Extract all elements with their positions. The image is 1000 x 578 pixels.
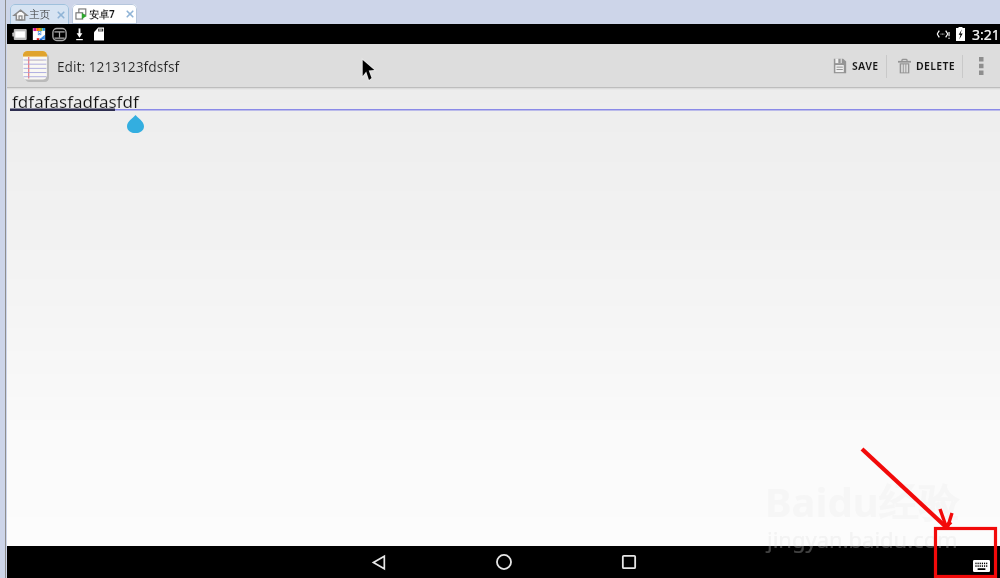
button[interactable]: Download (69, 24, 89, 44)
button[interactable]: Screen layout (49, 24, 69, 44)
button[interactable]: SD card (89, 24, 109, 44)
button[interactable]: Home (480, 546, 528, 578)
staticText: 主页 (29, 8, 50, 21)
button[interactable]: Recents (605, 546, 653, 578)
button[interactable]: Back (355, 546, 403, 578)
button[interactable]: 主页 (10, 4, 69, 25)
button[interactable]: 安卓7 (72, 4, 137, 24)
staticText: 安卓7 (89, 7, 115, 21)
staticText: 3:21 (972, 25, 1000, 44)
staticText: Baidu经验 (765, 474, 959, 529)
staticText: Edit: 1213123fdsfsf (57, 57, 180, 76)
button[interactable]: More options (963, 44, 999, 88)
button[interactable]: fdfafasfadfasfdf (7, 88, 1000, 546)
staticText: DELETE (916, 59, 956, 73)
staticText: jingyan.baidu.com (767, 524, 958, 554)
staticText: SAVE (852, 59, 879, 73)
button[interactable]: Apps (29, 24, 49, 44)
button[interactable]: DELETE (887, 44, 962, 88)
button[interactable]: Battery (9, 24, 29, 44)
staticText: fdfafasfadfasfdf (12, 90, 139, 113)
button[interactable]: SAVE (823, 44, 886, 88)
button[interactable]: Show keyboard (966, 556, 996, 576)
